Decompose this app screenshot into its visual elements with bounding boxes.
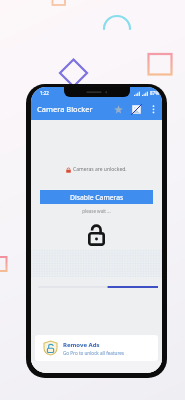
- button[interactable]: More options: [146, 98, 160, 120]
- button[interactable]: Disable Cameras: [40, 190, 153, 204]
- button[interactable]: Block camera: [126, 98, 146, 120]
- staticText: Camera Blocker: [37, 104, 93, 114]
- staticText: 87%: [150, 90, 159, 96]
- button[interactable]: Favorite: [110, 98, 126, 120]
- button[interactable]: Remove Ads: [35, 335, 158, 361]
- staticText: Cameras are unlocked.: [73, 166, 127, 173]
- staticText: Remove Ads: [63, 341, 100, 349]
- staticText: please wait ...: [31, 208, 162, 214]
- staticText: 1:22: [40, 90, 49, 96]
- staticText: Disable Cameras: [70, 193, 124, 202]
- staticText: Go Pro to unlock all features: [63, 350, 124, 356]
